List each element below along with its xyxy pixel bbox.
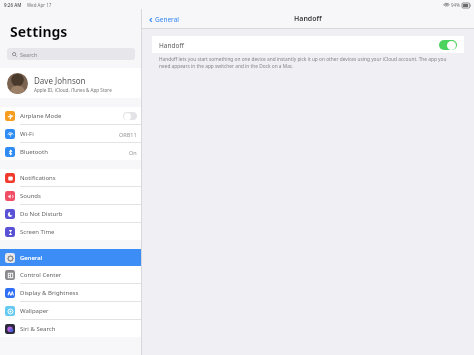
button[interactable]: Control Center bbox=[0, 266, 142, 283]
button[interactable]: General bbox=[146, 13, 181, 26]
staticText: Sounds bbox=[20, 192, 41, 200]
button[interactable]: Search bbox=[7, 48, 135, 60]
staticText: 94% bbox=[451, 2, 460, 8]
staticText: Wed Apr 17 bbox=[27, 2, 52, 8]
button[interactable]: Siri & Search bbox=[0, 320, 142, 337]
button[interactable]: Wi-Fi bbox=[0, 125, 142, 142]
staticText: Search bbox=[20, 51, 38, 58]
staticText: Wi-Fi bbox=[20, 130, 34, 138]
button[interactable]: Do Not Disturb bbox=[0, 205, 142, 222]
button[interactable]: Display & Brightness bbox=[0, 284, 142, 301]
button[interactable]: Notifications bbox=[0, 169, 142, 186]
staticText: Do Not Disturb bbox=[20, 210, 63, 218]
staticText: Control Center bbox=[20, 271, 62, 279]
button[interactable]: Airplane Mode toggle bbox=[123, 112, 137, 120]
staticText: Dave Johnson bbox=[34, 75, 86, 86]
staticText: 9:26 AM bbox=[4, 2, 22, 8]
button[interactable]: Handoff bbox=[152, 36, 464, 53]
staticText: Notifications bbox=[20, 174, 56, 182]
button[interactable]: Airplane Mode bbox=[0, 107, 142, 124]
staticText: Apple ID, iCloud, iTunes & App Store bbox=[34, 87, 112, 93]
staticText: Siri & Search bbox=[20, 325, 56, 333]
staticText: Settings bbox=[10, 22, 68, 41]
staticText: Airplane Mode bbox=[20, 112, 62, 120]
button[interactable]: Dave Johnson bbox=[0, 68, 142, 98]
button[interactable]: Screen Time bbox=[0, 223, 142, 240]
staticText: General bbox=[155, 15, 179, 24]
staticText: Screen Time bbox=[20, 228, 55, 236]
staticText: General bbox=[20, 254, 43, 262]
staticText: Handoff bbox=[294, 14, 322, 24]
staticText: Bluetooth bbox=[20, 148, 48, 156]
staticText: ORB11 bbox=[119, 131, 137, 138]
button[interactable]: Bluetooth bbox=[0, 143, 142, 160]
button[interactable]: General bbox=[0, 249, 142, 266]
staticText: Wallpaper bbox=[20, 307, 49, 315]
staticText: Handoff lets you start something on one … bbox=[159, 56, 457, 69]
staticText: Handoff bbox=[159, 41, 184, 50]
staticText: On bbox=[129, 149, 137, 156]
button[interactable]: Wallpaper bbox=[0, 302, 142, 319]
button[interactable]: Handoff toggle, on bbox=[439, 40, 457, 50]
staticText: Display & Brightness bbox=[20, 289, 79, 297]
button[interactable]: Sounds bbox=[0, 187, 142, 204]
